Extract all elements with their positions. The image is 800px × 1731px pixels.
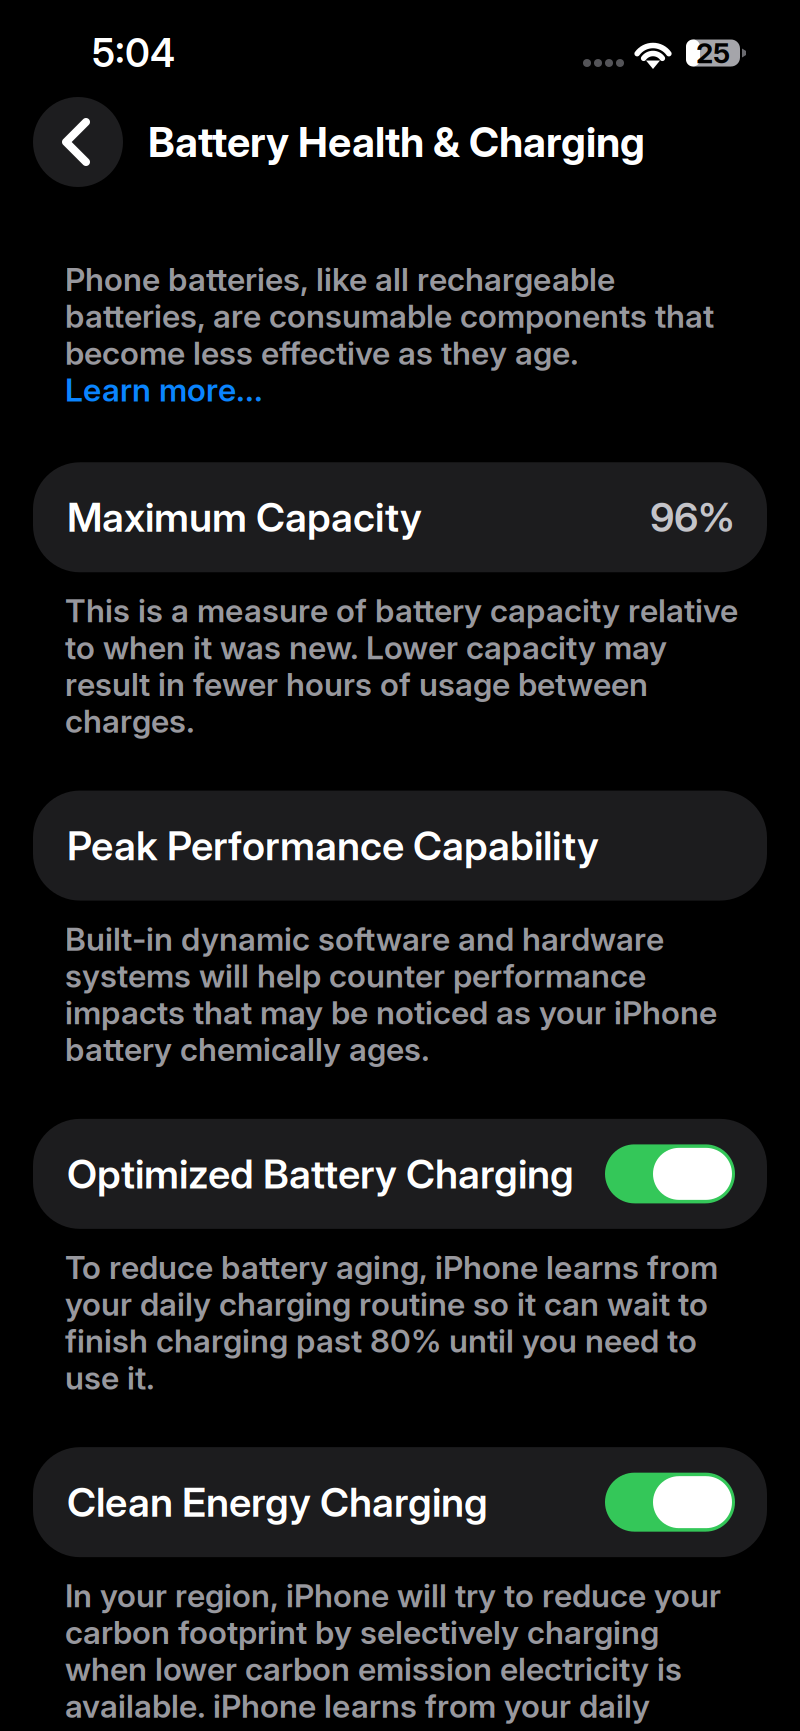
staticText: Learn more... [65,371,263,408]
staticText: Optimized Battery Charging [67,1151,574,1197]
button[interactable]: Optimized Battery Charging [33,1119,767,1229]
button[interactable]: Learn more... [0,371,800,408]
staticText: 5:04 [92,31,175,75]
staticText: To reduce battery aging, iPhone learns f… [65,1249,718,1396]
button[interactable]: Clean Energy Charging [605,1473,735,1532]
staticText: In your region, iPhone will try to reduc… [65,1577,734,1731]
button[interactable]: Maximum Capacity [33,462,767,572]
staticText: Built-in dynamic software and hardware s… [65,921,717,1068]
button[interactable]: Optimized Battery Charging [605,1144,735,1203]
staticText: Peak Performance Capability [67,823,599,869]
staticText: 96% [650,494,735,540]
staticText: 25 [696,37,730,69]
staticText: Maximum Capacity [67,494,422,540]
staticText: Phone batteries, like all rechargeable b… [65,261,714,371]
staticText: This is a measure of battery capacity re… [65,592,738,740]
button[interactable]: Clean Energy Charging [33,1447,767,1557]
staticText: Battery Health & Charging [148,118,645,166]
staticText: Clean Energy Charging [67,1479,488,1525]
button[interactable]: Back [33,97,123,187]
button[interactable]: Peak Performance Capability [33,791,767,901]
